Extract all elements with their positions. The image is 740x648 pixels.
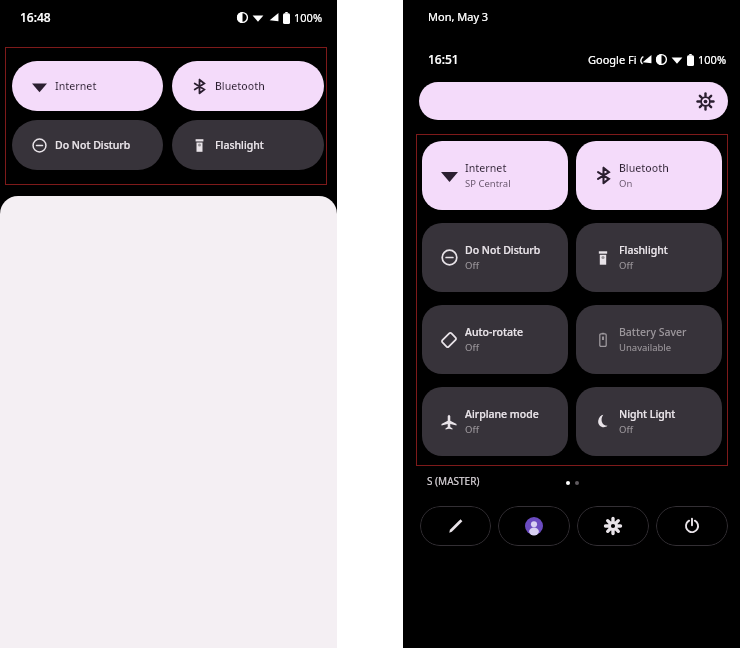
staticText: Unavailable bbox=[619, 341, 672, 354]
staticText: 100% bbox=[698, 52, 727, 67]
staticText: 100% bbox=[294, 10, 323, 25]
button[interactable]: Flashlight bbox=[172, 120, 324, 170]
button[interactable]: Internet bbox=[422, 141, 568, 210]
staticText: Do Not Disturb bbox=[55, 138, 131, 152]
button[interactable]: Night Light bbox=[576, 387, 722, 456]
staticText: Battery Saver bbox=[619, 325, 687, 339]
staticText: 16:51 bbox=[428, 51, 459, 67]
button[interactable]: Brightness bbox=[419, 82, 728, 120]
staticText: Off bbox=[465, 341, 479, 354]
button[interactable]: Bluetooth bbox=[172, 61, 324, 111]
staticText: Flashlight bbox=[215, 138, 264, 152]
button[interactable]: Do Not Disturb bbox=[12, 120, 163, 170]
staticText: Internet bbox=[55, 79, 97, 93]
staticText: Auto-rotate bbox=[465, 325, 523, 339]
button[interactable]: Internet bbox=[12, 61, 163, 111]
staticText: Off bbox=[619, 259, 633, 272]
button[interactable]: Do Not Disturb bbox=[422, 223, 568, 292]
staticText: Flashlight bbox=[619, 243, 668, 257]
staticText: Night Light bbox=[619, 407, 676, 421]
staticText: Off bbox=[465, 259, 479, 272]
staticText: 16:48 bbox=[20, 9, 51, 25]
staticText: Bluetooth bbox=[215, 79, 265, 93]
staticText: Off bbox=[619, 423, 633, 436]
staticText: Google Fi bbox=[588, 52, 637, 67]
staticText: Off bbox=[465, 423, 479, 436]
button[interactable]: Airplane mode bbox=[422, 387, 568, 456]
button[interactable]: Auto-rotate bbox=[422, 305, 568, 374]
button[interactable]: Power bbox=[656, 506, 728, 546]
button[interactable]: Edit bbox=[420, 506, 491, 546]
staticText: Mon, May 3 bbox=[428, 9, 489, 24]
staticText: Internet bbox=[465, 161, 507, 175]
staticText: Airplane mode bbox=[465, 407, 539, 421]
staticText: Do Not Disturb bbox=[465, 243, 541, 257]
button[interactable]: User bbox=[498, 506, 570, 546]
staticText: On bbox=[619, 177, 633, 190]
staticText: Bluetooth bbox=[619, 161, 669, 175]
button[interactable]: Battery Saver bbox=[576, 305, 722, 374]
staticText: S (MASTER) bbox=[427, 474, 480, 488]
button[interactable]: Bluetooth bbox=[576, 141, 722, 210]
button[interactable]: Settings bbox=[577, 506, 649, 546]
staticText: SP Central bbox=[465, 177, 511, 190]
button[interactable]: Flashlight bbox=[576, 223, 722, 292]
